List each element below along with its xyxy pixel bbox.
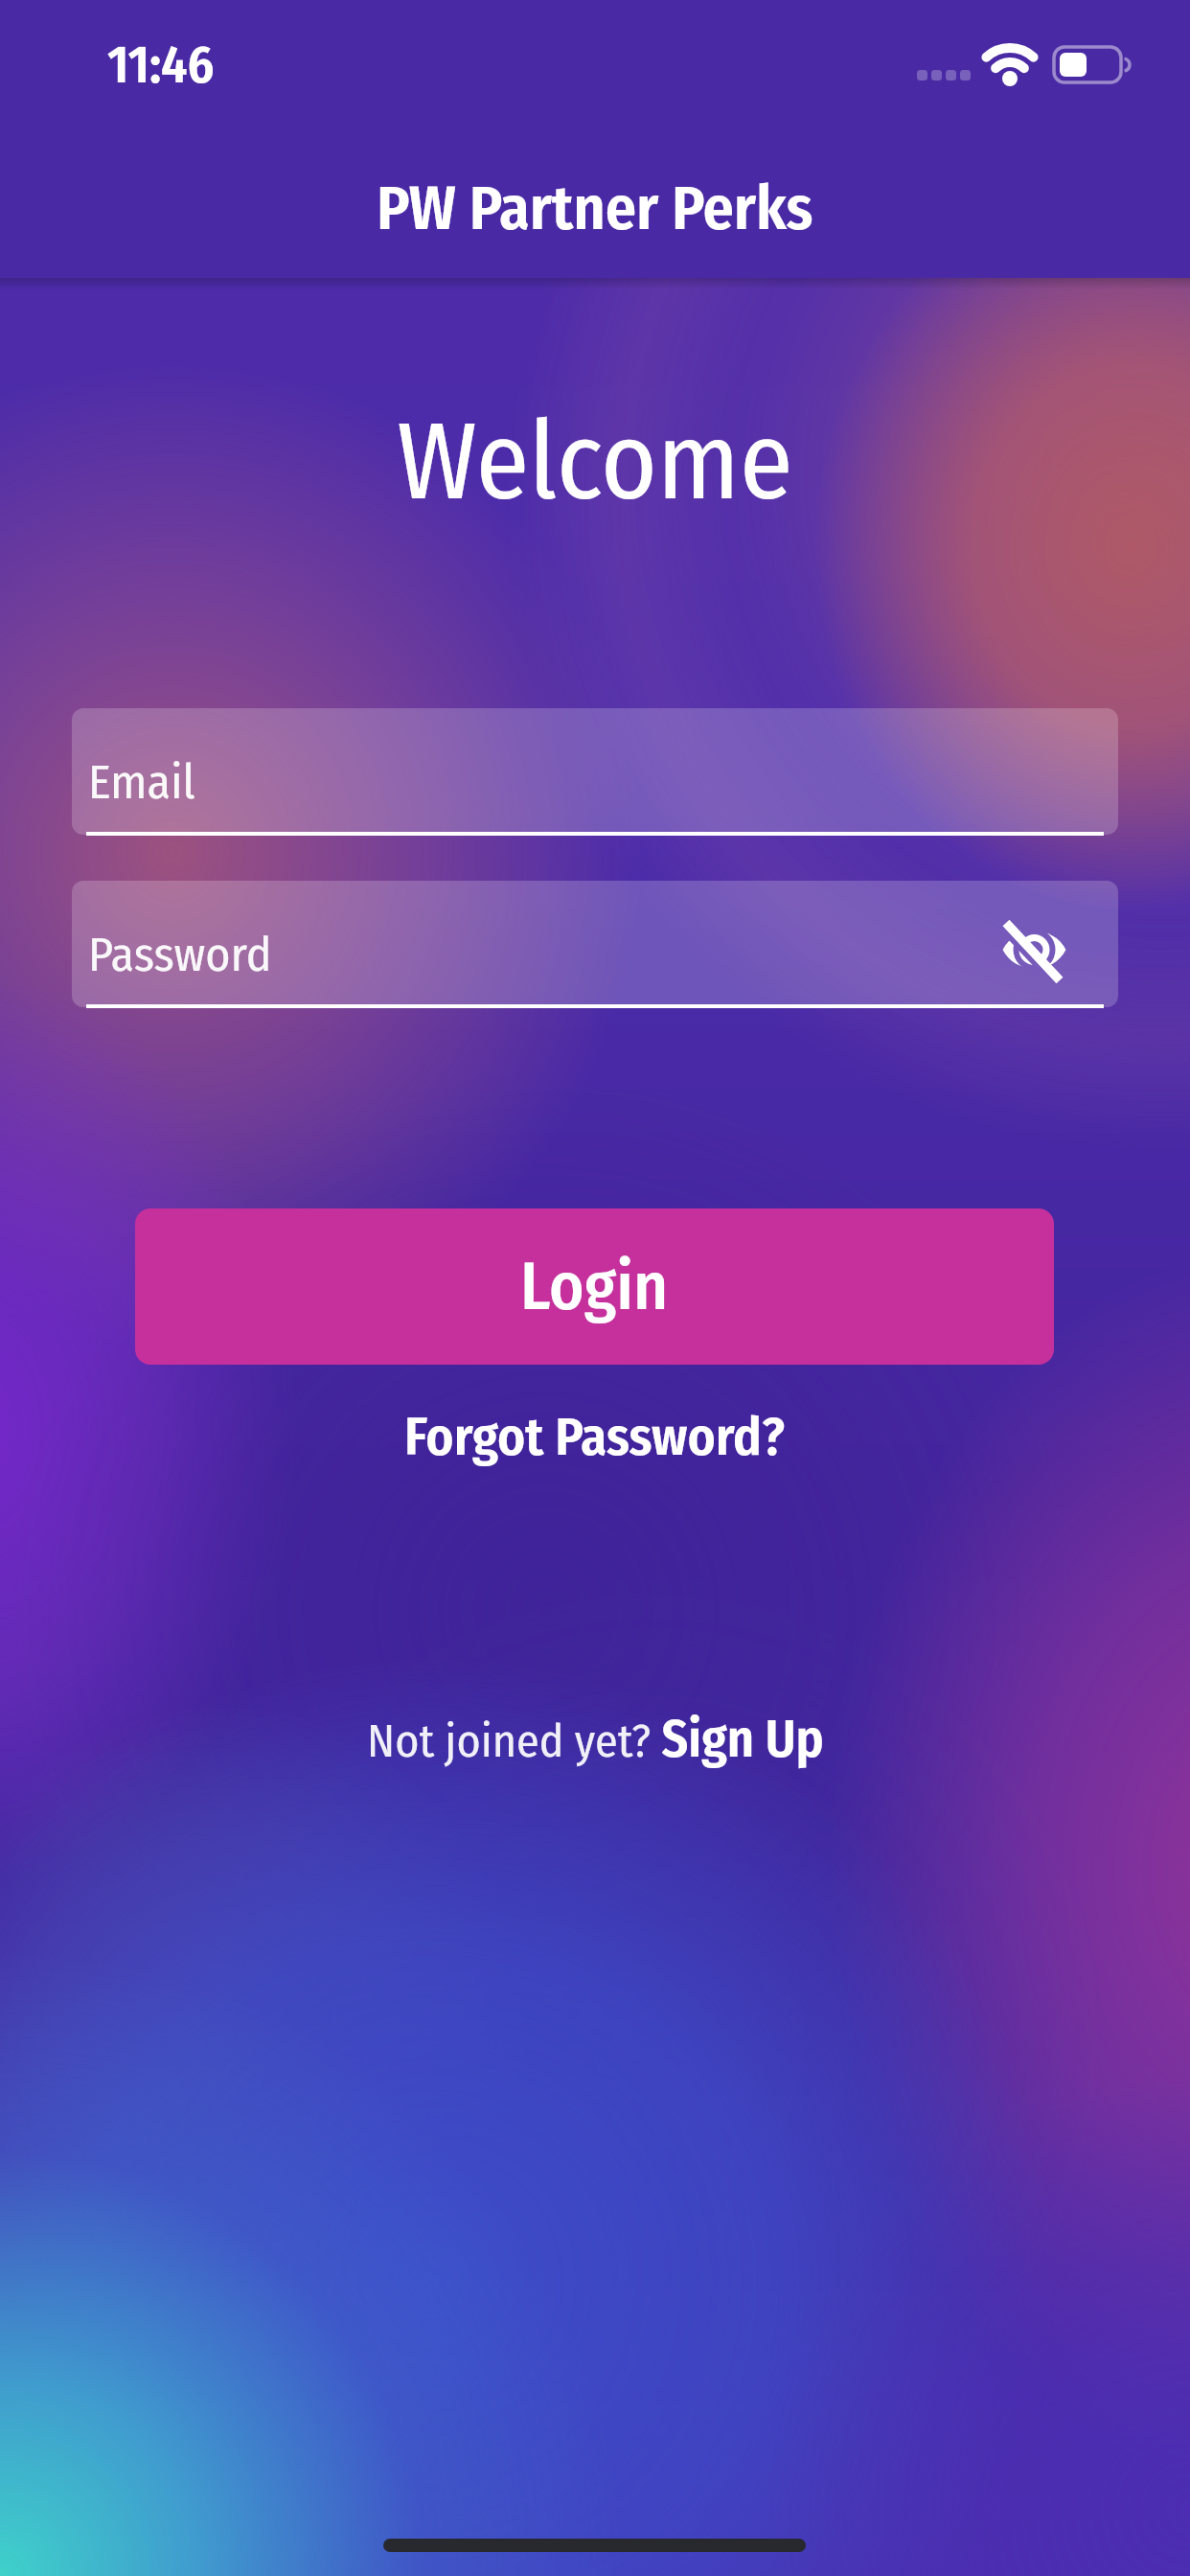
button[interactable]: Email	[72, 708, 1118, 835]
staticText: Not joined yet? Sign Up	[367, 1709, 824, 1771]
staticText: Welcome	[397, 398, 793, 526]
staticText: PW Partner Perks	[377, 172, 813, 245]
button[interactable]: Forgot Password?	[0, 1394, 1190, 1481]
button[interactable]: Password	[72, 881, 1118, 1007]
staticText: 11:46	[107, 34, 215, 97]
button[interactable]: Login	[135, 1208, 1054, 1365]
staticText: Password	[88, 926, 272, 983]
staticText: Email	[88, 753, 195, 811]
staticText: Forgot Password?	[404, 1406, 786, 1469]
button[interactable]: Not joined yet? Sign Up	[0, 1696, 1190, 1782]
staticText: Login	[520, 1247, 669, 1326]
